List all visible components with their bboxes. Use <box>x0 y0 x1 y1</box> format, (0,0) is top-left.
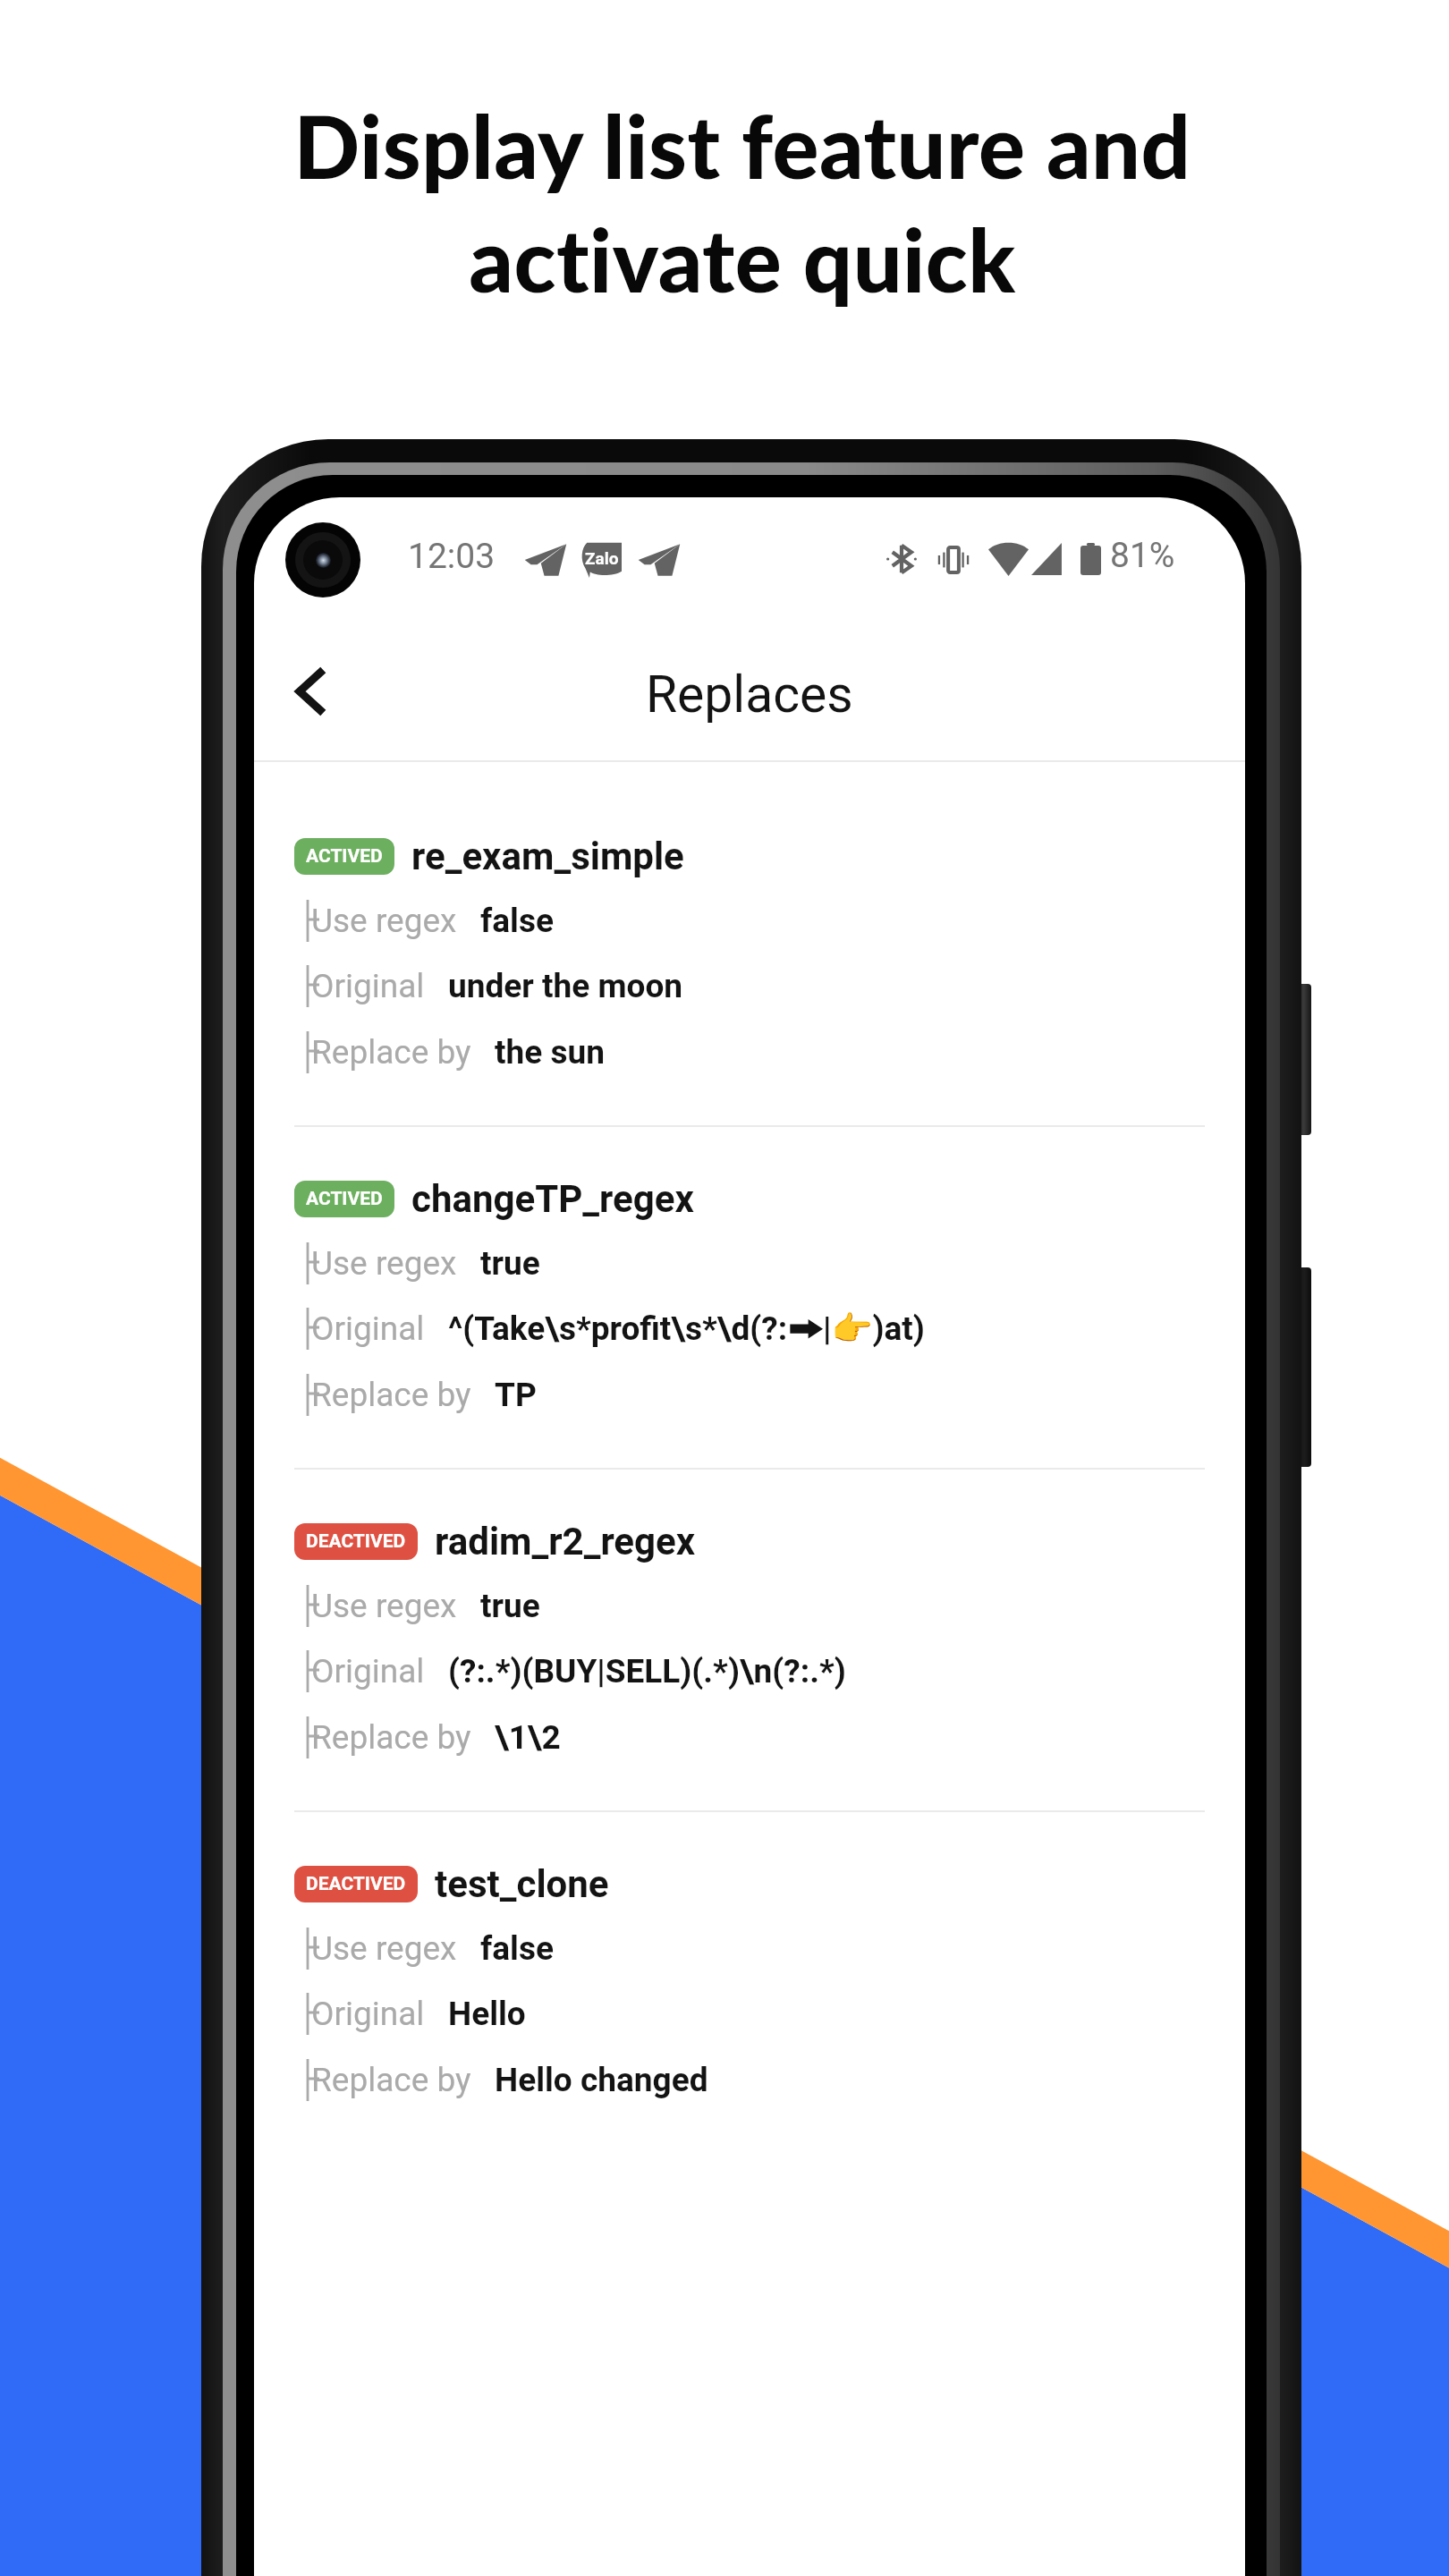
staticText: ACTIVED <box>306 1188 383 1210</box>
staticText: false <box>480 902 554 940</box>
staticText: true <box>480 1587 540 1625</box>
staticText: Original <box>311 1309 425 1348</box>
staticText: Original <box>311 1995 425 2033</box>
staticText: (?:.*)(BUY|SELL)(.*)\n(?:.*) <box>448 1652 846 1690</box>
staticText: Use regex <box>311 1587 457 1625</box>
staticText: Hello changed <box>495 2061 708 2099</box>
staticText: 12:03 <box>408 536 496 577</box>
staticText: Original <box>311 1652 425 1690</box>
staticText: Replace by <box>311 1718 471 1757</box>
staticText: TP <box>495 1376 537 1414</box>
button[interactable]: ACTIVED <box>254 826 1245 1121</box>
staticText: Zalo <box>585 548 619 568</box>
staticText: re_exam_simple <box>411 835 684 878</box>
staticText: 81% <box>1110 535 1175 576</box>
staticText: Replaces <box>646 665 853 724</box>
staticText: DEACTIVED <box>306 1873 406 1895</box>
staticText: changeTP_regex <box>411 1177 694 1221</box>
button[interactable]: DEACTIVED <box>254 1511 1245 1806</box>
staticText: the sun <box>495 1033 605 1072</box>
staticText: Replace by <box>311 1033 471 1072</box>
staticText: DEACTIVED <box>306 1530 406 1553</box>
staticText: Replace by <box>311 2061 471 2099</box>
staticText: \1\2 <box>495 1718 561 1757</box>
staticText: Hello <box>448 1995 526 2033</box>
staticText: Use regex <box>311 902 457 940</box>
staticText: Use regex <box>311 1244 457 1283</box>
button[interactable]: ACTIVED <box>254 1168 1245 1463</box>
staticText: ACTIVED <box>306 845 383 868</box>
staticText: under the moon <box>448 967 683 1005</box>
button[interactable]: DEACTIVED <box>254 1853 1245 2148</box>
staticText: Original <box>311 967 425 1005</box>
staticText: Use regex <box>311 1929 457 1968</box>
staticText: false <box>480 1929 554 1968</box>
staticText: true <box>480 1244 540 1283</box>
staticText: ^(Take\s*profit\s*\d(?: <box>448 1309 788 1348</box>
staticText: Display list feature and activate quick <box>18 93 1449 311</box>
button[interactable]: Back <box>267 648 353 734</box>
staticText: |👉)at) <box>823 1309 925 1348</box>
staticText: Replace by <box>311 1376 471 1414</box>
staticText: radim_r2_regex <box>435 1520 696 1563</box>
staticText: test_clone <box>435 1862 609 1906</box>
